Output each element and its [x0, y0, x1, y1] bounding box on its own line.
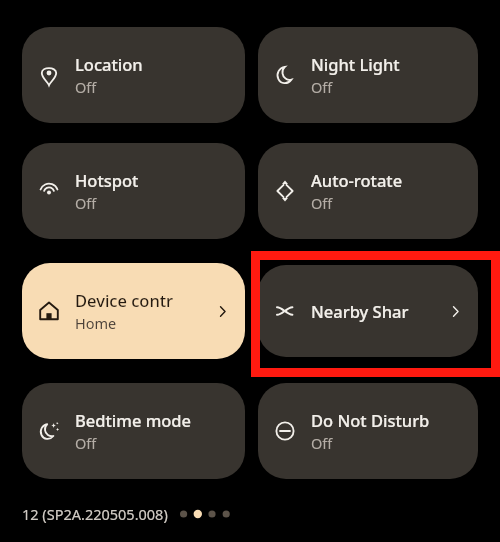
button[interactable]: Location: [22, 27, 245, 123]
staticText: Location: [75, 53, 143, 75]
staticText: Hotspot: [75, 169, 139, 191]
staticText: Off: [75, 193, 97, 213]
staticText: Home: [75, 313, 117, 333]
staticText: Off: [311, 433, 333, 453]
staticText: Nearby Shar: [311, 300, 409, 322]
staticText: Auto-rotate: [311, 169, 403, 191]
staticText: Off: [75, 77, 97, 97]
staticText: Off: [75, 433, 97, 453]
button[interactable]: Nearby Shar: [258, 265, 478, 357]
staticText: Bedtime mode: [75, 409, 192, 431]
staticText: Night Light: [311, 53, 400, 75]
button[interactable]: Device contr: [22, 263, 245, 359]
button[interactable]: Do Not Disturb: [258, 383, 478, 479]
button[interactable]: Bedtime mode: [22, 383, 245, 479]
staticText: Off: [311, 77, 333, 97]
button[interactable]: Night Light: [258, 27, 478, 123]
staticText: Do Not Disturb: [311, 409, 430, 431]
button[interactable]: Hotspot: [22, 143, 245, 239]
staticText: 12 (SP2A.220505.008): [22, 504, 168, 524]
staticText: Off: [311, 193, 333, 213]
staticText: Device contr: [75, 289, 174, 311]
button[interactable]: Auto-rotate: [258, 143, 478, 239]
